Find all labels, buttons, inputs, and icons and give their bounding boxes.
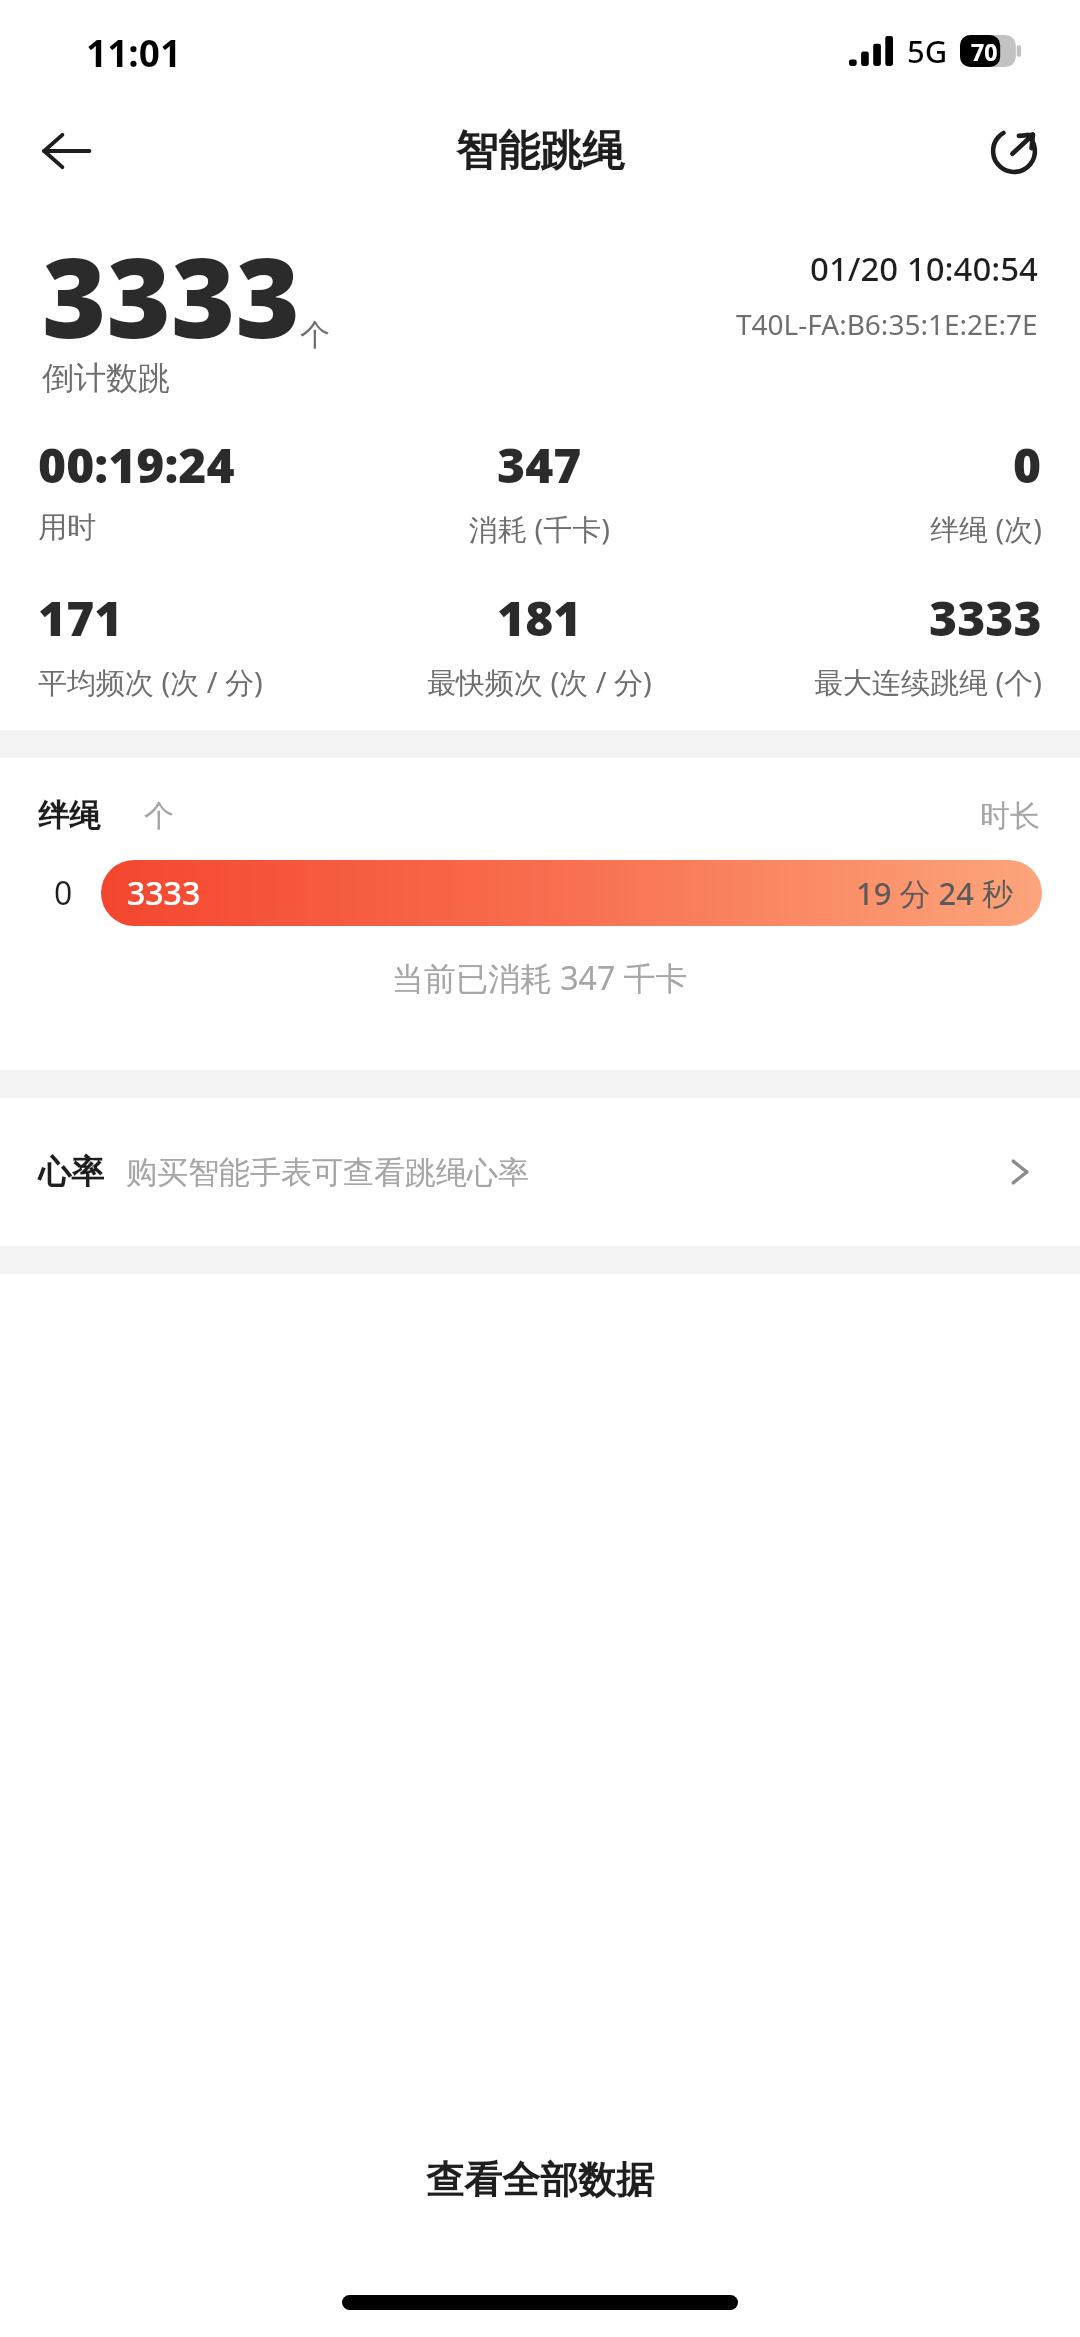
staticText: 11:01 — [86, 27, 182, 77]
button[interactable]: Refresh — [974, 111, 1054, 191]
staticText: 时长 — [980, 797, 1040, 835]
button[interactable]: 心率 — [0, 1098, 1080, 1246]
staticText: 绊绳 (次) — [930, 509, 1042, 549]
staticText: 171 — [38, 585, 123, 650]
staticText: 消耗 (千卡) — [469, 509, 610, 549]
staticText: 0 — [54, 871, 73, 915]
staticText: 智能跳绳 — [456, 125, 624, 178]
staticText: 心率 — [38, 1151, 104, 1193]
staticText: 个 — [144, 797, 174, 835]
staticText: 购买智能手表可查看跳绳心率 — [126, 1153, 529, 1192]
staticText: 5G — [907, 30, 948, 72]
staticText: 0 — [1013, 432, 1042, 497]
staticText: 最快频次 (次 / 分) — [427, 662, 652, 702]
staticText: 3333 — [127, 871, 201, 915]
button[interactable]: Back — [26, 111, 106, 191]
staticText: 当前已消耗 347 千卡 — [392, 956, 688, 1000]
staticText: 个 — [300, 316, 330, 354]
button[interactable]: 查看全部数据 — [0, 2121, 1080, 2239]
staticText: T40L-FA:B6:35:1E:2E:7E — [736, 305, 1038, 343]
staticText: 01/20 10:40:54 — [810, 246, 1038, 291]
staticText: 用时 — [38, 509, 96, 546]
staticText: 查看全部数据 — [426, 2156, 654, 2204]
staticText: 3333 — [42, 220, 300, 370]
staticText: 181 — [497, 585, 582, 650]
staticText: 19 分 24 秒 — [856, 872, 1014, 914]
staticText: 3333 — [929, 585, 1042, 650]
staticText: 绊绳 — [38, 796, 100, 835]
staticText: 00:19:24 — [38, 432, 235, 497]
staticText: 平均频次 (次 / 分) — [38, 662, 263, 702]
staticText: 70 — [971, 36, 998, 67]
staticText: 347 — [497, 432, 582, 497]
button[interactable]: 3333 — [101, 860, 1042, 926]
staticText: 最大连续跳绳 (个) — [814, 662, 1042, 702]
staticText: 倒计数跳 — [42, 358, 170, 398]
